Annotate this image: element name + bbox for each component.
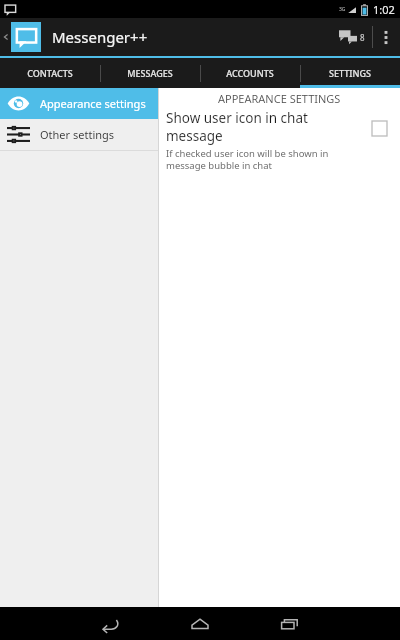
button[interactable]: Show user icon in chat message checkbox bbox=[364, 113, 394, 143]
button[interactable]: ACCOUNTS bbox=[200, 58, 300, 88]
staticText: Show user icon in chat message bbox=[166, 109, 360, 145]
button[interactable]: Recent apps bbox=[261, 607, 319, 640]
staticText: CONTACTS bbox=[27, 67, 73, 79]
staticText: Messenger++ bbox=[52, 27, 148, 47]
button[interactable]: CONTACTS bbox=[0, 58, 100, 88]
staticText: APPEARANCE SETTINGS bbox=[218, 91, 341, 106]
staticText: 8 bbox=[360, 32, 365, 43]
button[interactable]: Show user icon in chat message bbox=[158, 109, 400, 180]
staticText: Appearance settings bbox=[40, 96, 146, 111]
staticText: 1:02 bbox=[373, 2, 395, 17]
button[interactable]: Back bbox=[81, 607, 139, 640]
staticText: 3G bbox=[339, 6, 346, 13]
button[interactable]: Other settings bbox=[0, 119, 158, 150]
button[interactable]: MESSAGES bbox=[100, 58, 200, 88]
button[interactable]: Messages bbox=[332, 18, 372, 56]
staticText: MESSAGES bbox=[127, 67, 173, 79]
button[interactable]: Appearance settings bbox=[0, 88, 158, 119]
staticText: ACCOUNTS bbox=[226, 67, 274, 79]
button[interactable]: Home bbox=[171, 607, 229, 640]
button[interactable]: More options bbox=[373, 18, 399, 56]
button[interactable]: SETTINGS bbox=[300, 58, 400, 88]
staticText: Other settings bbox=[40, 127, 115, 142]
staticText: SETTINGS bbox=[329, 67, 371, 79]
staticText: If checked user icon will be shown in me… bbox=[166, 147, 329, 172]
button[interactable]: Messenger app icon bbox=[11, 22, 41, 52]
